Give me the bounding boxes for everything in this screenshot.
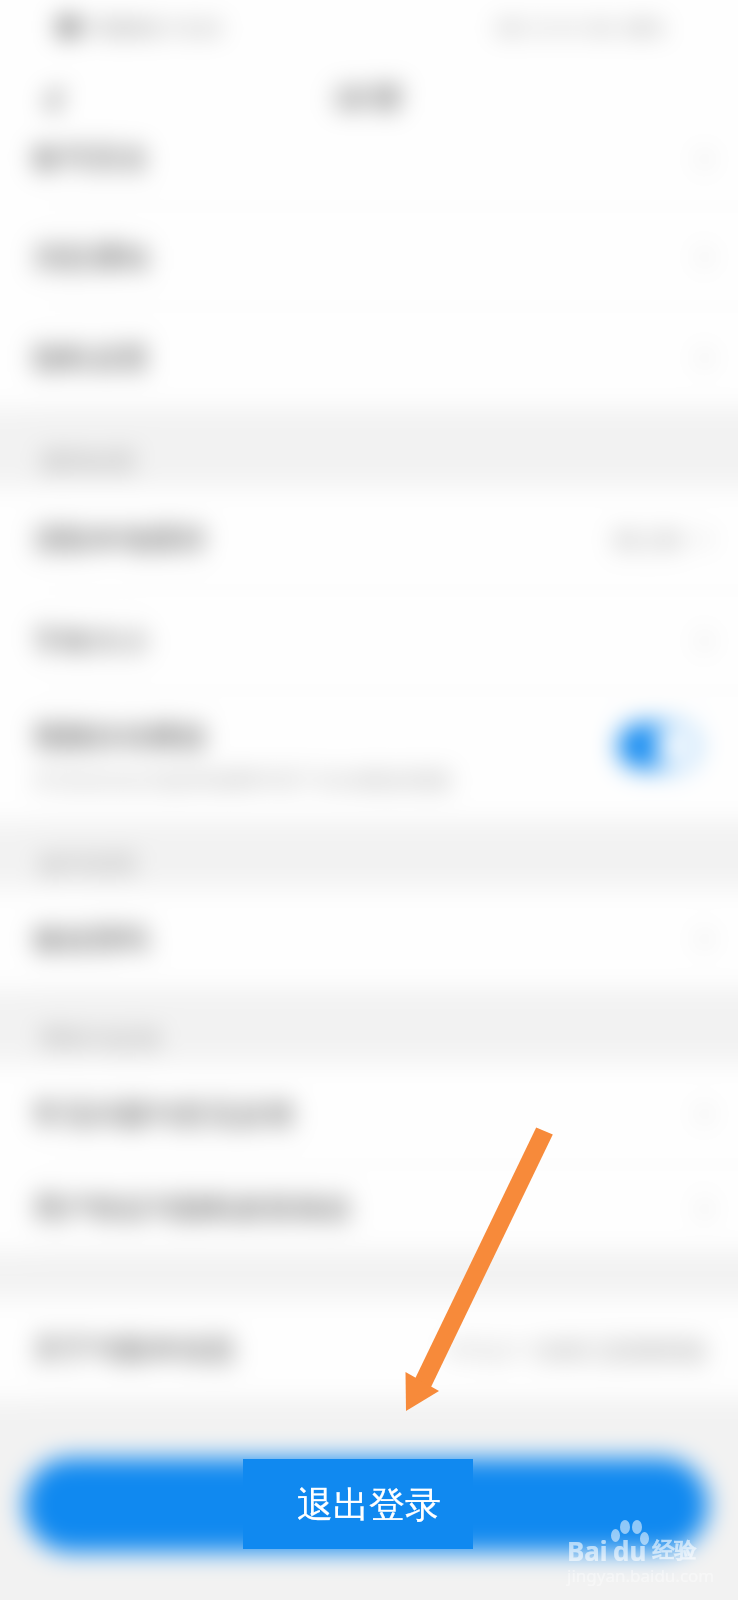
staticText: 关于与版本信息 <box>33 1331 236 1368</box>
staticText: 中国移动 10:24 <box>84 14 221 41</box>
staticText: V 5.2.1 当前已是最新版 <box>448 1332 708 1366</box>
staticText: 通用设置 <box>40 447 136 477</box>
button[interactable]: 清除本地缓存 <box>0 487 738 591</box>
staticText: du <box>613 1533 647 1568</box>
button[interactable]: 退出登录 <box>243 1459 473 1549</box>
staticText: 账号安全 <box>33 140 149 177</box>
button[interactable]: Toggle auto play <box>618 723 698 769</box>
button[interactable]: 隐私设置 <box>0 307 738 409</box>
staticText: 经验 <box>652 1537 696 1565</box>
staticText: jingyan.baidu.com <box>567 1564 715 1587</box>
button[interactable]: 修改密码 <box>0 888 738 990</box>
staticText: 常见问题与意见反馈 <box>33 1096 294 1133</box>
button[interactable]: 关于与版本信息 <box>0 1298 738 1400</box>
staticText: 设置 <box>333 80 405 125</box>
staticText: 消息通知 <box>33 239 149 276</box>
button[interactable]: 消息通知 <box>0 207 738 307</box>
button[interactable]: 字体大小 <box>0 591 738 691</box>
button[interactable]: 视频自动播放 <box>0 691 738 822</box>
button[interactable]: 退出登录 <box>24 1458 708 1552</box>
staticText: 字体大小 <box>33 623 149 660</box>
staticText: 视频自动播放 <box>33 718 207 755</box>
button[interactable]: 账号安全 <box>0 110 738 207</box>
staticText: 退出登录 <box>297 1482 441 1527</box>
staticText: 隐私设置 <box>33 340 149 377</box>
staticText: 用户协议与隐私政策条款 <box>33 1190 352 1227</box>
button[interactable]: Back <box>40 86 72 118</box>
staticText: Bai <box>567 1533 608 1568</box>
staticText: 清除本地缓存 <box>33 521 207 558</box>
button[interactable]: 常见问题与意见反馈 <box>0 1063 738 1165</box>
staticText: 退出登录 <box>294 1483 438 1528</box>
button[interactable]: 用户协议与隐私政策条款 <box>0 1165 738 1252</box>
staticText: 修改密码 <box>33 921 149 958</box>
